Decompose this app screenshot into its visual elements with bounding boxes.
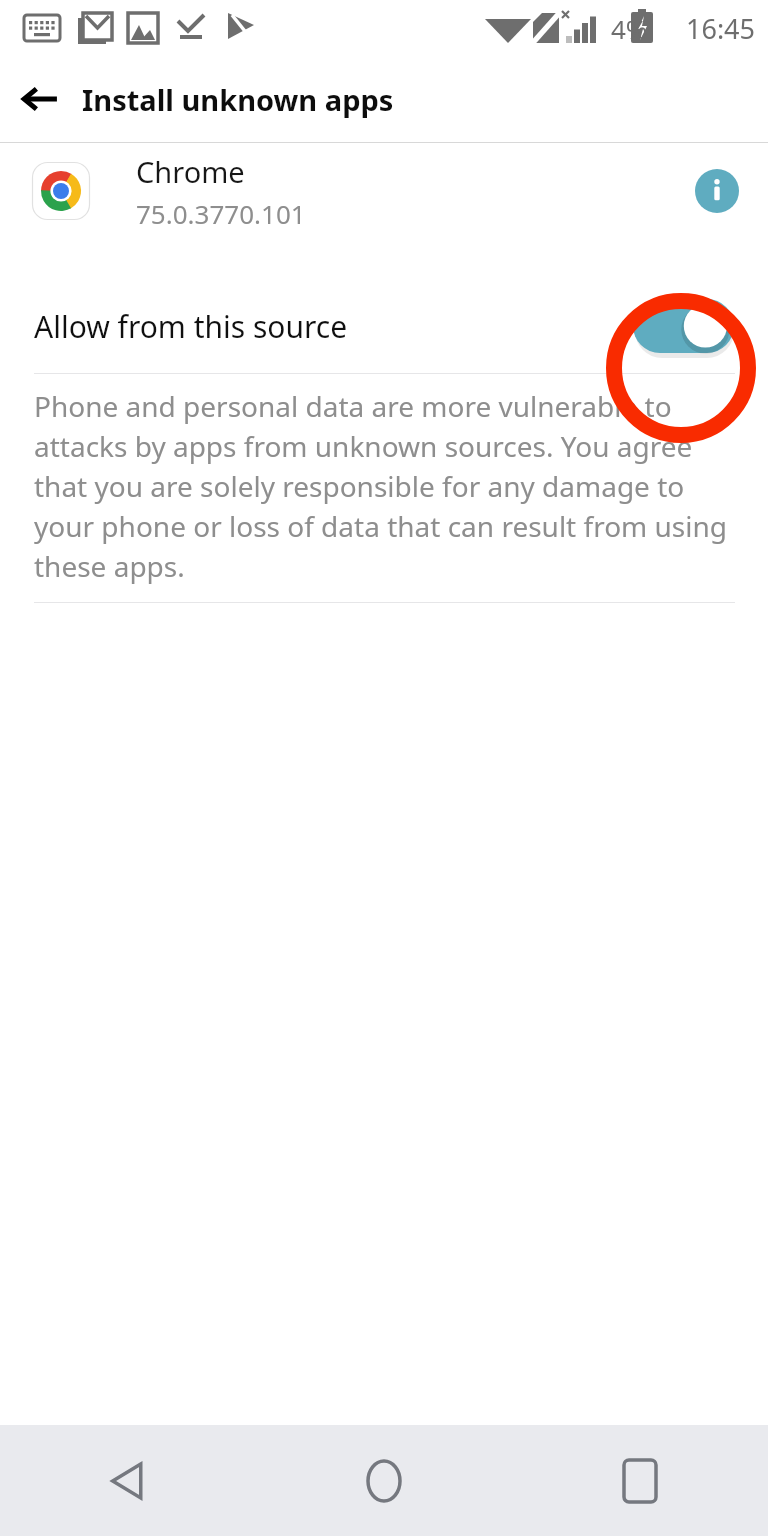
staticText: 75.0.3770.101 — [136, 196, 306, 231]
button[interactable]: Home — [256, 1425, 512, 1536]
staticText: Chrome — [136, 152, 245, 191]
button[interactable]: Recent apps — [512, 1425, 768, 1536]
button[interactable]: Back — [12, 71, 68, 127]
staticText: Allow from this source — [34, 306, 348, 347]
button[interactable]: Back — [0, 1425, 256, 1536]
button[interactable]: Allow from this source — [0, 279, 768, 373]
button[interactable]: Chrome — [0, 143, 768, 239]
button[interactable]: App info — [688, 162, 746, 220]
button[interactable]: Allow from this source toggle — [633, 299, 734, 353]
staticText: Phone and personal data are more vulnera… — [34, 387, 742, 586]
staticText: 4% — [611, 11, 648, 46]
staticText: 16:45 — [686, 10, 756, 47]
staticText: Install unknown apps — [82, 80, 394, 119]
